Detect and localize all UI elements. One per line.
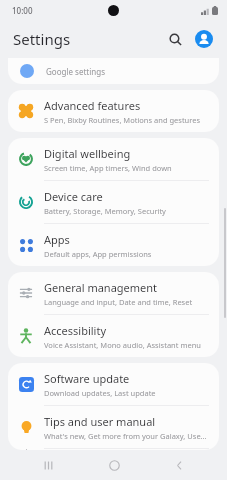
- button[interactable]: Software update: [8, 363, 219, 405]
- button[interactable]: Accessibility: [8, 315, 219, 357]
- button[interactable]: Device care: [8, 181, 219, 223]
- staticText: Download updates, Last update: [44, 388, 156, 398]
- staticText: Language and input, Date and time, Reset: [44, 297, 193, 307]
- button[interactable]: Tips and user manual: [8, 406, 219, 448]
- staticText: General management: [44, 280, 158, 295]
- button[interactable]: Search: [162, 26, 188, 52]
- button[interactable]: Digital wellbeing: [8, 138, 219, 180]
- button[interactable]: Apps: [8, 224, 219, 266]
- staticText: Software update: [44, 371, 130, 386]
- staticText: Accessibility: [44, 323, 107, 338]
- staticText: S Pen, Bixby Routines, Motions and gestu…: [44, 115, 200, 125]
- staticText: Digital wellbeing: [44, 146, 131, 161]
- button[interactable]: Recents: [31, 450, 65, 480]
- button[interactable]: Home: [97, 450, 131, 480]
- button[interactable]: Advanced features: [8, 90, 219, 132]
- staticText: Google settings: [46, 66, 105, 77]
- staticText: Tips and user manual: [44, 414, 156, 429]
- staticText: What's new, Get more from your Galaxy, U…: [44, 431, 209, 441]
- button[interactable]: Account: [191, 26, 217, 52]
- staticText: Screen time, App timers, Wind down: [44, 163, 172, 173]
- button[interactable]: About phone: [8, 449, 219, 450]
- staticText: Advanced features: [44, 98, 141, 113]
- button[interactable]: Back: [162, 450, 196, 480]
- staticText: Device care: [44, 189, 103, 204]
- staticText: Settings: [13, 29, 71, 49]
- staticText: 10:00: [12, 5, 33, 16]
- button[interactable]: Google settings: [8, 58, 219, 84]
- button[interactable]: General management: [8, 272, 219, 314]
- staticText: Default apps, App permissions: [44, 249, 152, 259]
- staticText: Battery, Storage, Memory, Security: [44, 206, 166, 216]
- staticText: Apps: [44, 232, 70, 247]
- staticText: Voice Assistant, Mono audio, Assistant m…: [44, 340, 201, 350]
